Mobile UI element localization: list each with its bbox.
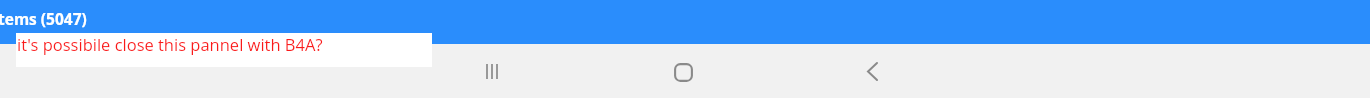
button[interactable]: Recent apps [397,44,587,98]
staticText: it's possibile close this pannel with B4… [17,33,323,55]
button[interactable]: Back [777,44,967,98]
button[interactable]: Home [587,44,777,98]
staticText: tems (5047) [0,8,87,29]
button[interactable]: it's possibile close this pannel with B4… [16,33,432,67]
button[interactable]: tems (5047) [0,0,92,44]
